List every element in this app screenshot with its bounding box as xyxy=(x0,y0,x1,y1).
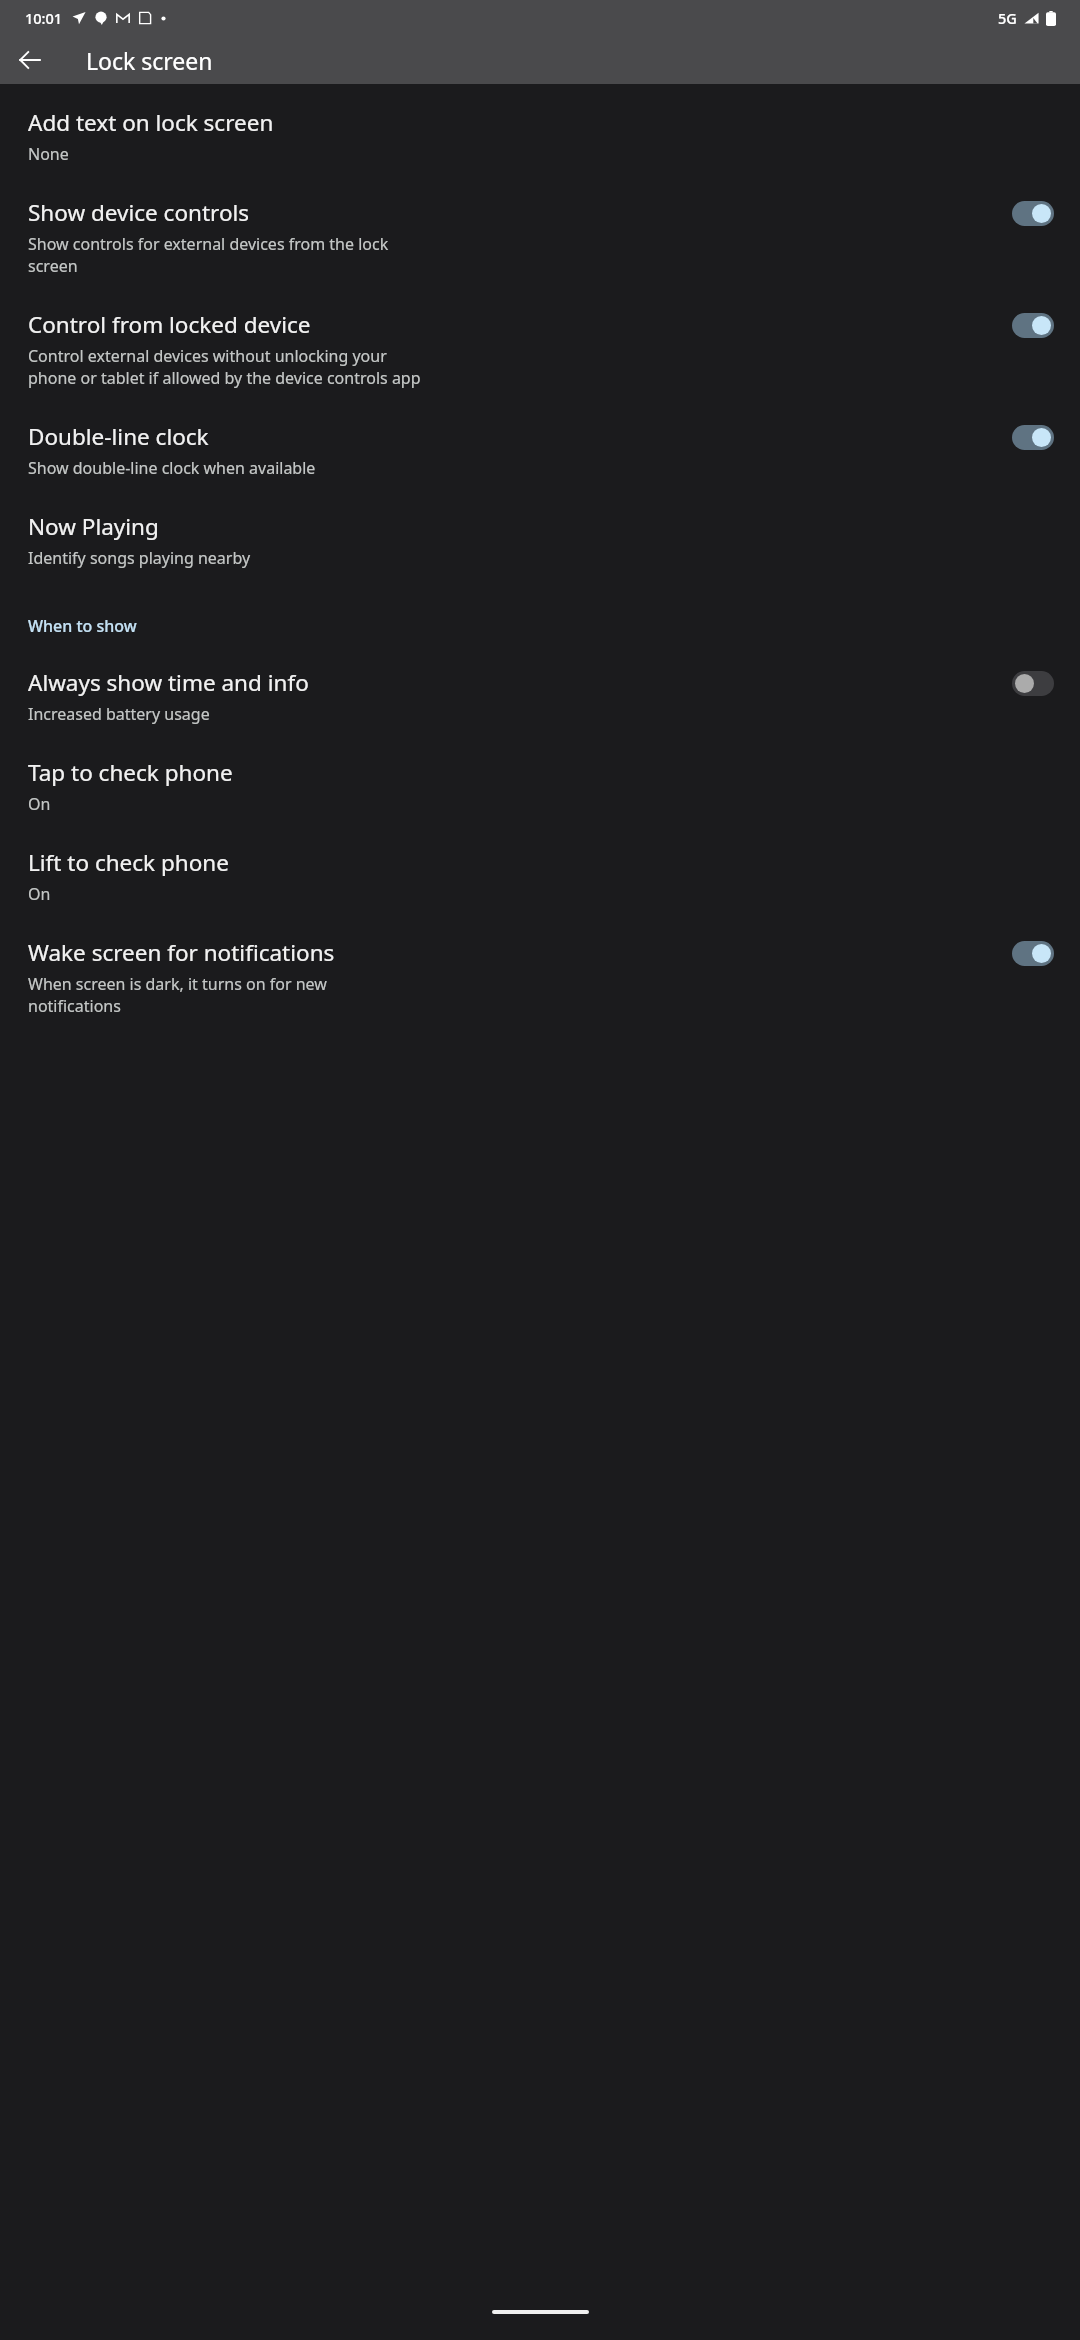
button[interactable]: Control from locked device xyxy=(1012,313,1054,338)
staticText: Increased battery usage xyxy=(28,703,210,725)
staticText: When to show xyxy=(28,615,137,637)
staticText: Add text on lock screen xyxy=(28,107,274,138)
button[interactable]: Show device controls xyxy=(0,181,1080,293)
staticText: When screen is dark, it turns on for new xyxy=(28,973,327,995)
staticText: None xyxy=(28,143,69,165)
button[interactable]: Always show time and info xyxy=(1012,671,1054,696)
staticText: Control from locked device xyxy=(28,309,311,340)
button[interactable]: Back xyxy=(6,36,54,84)
staticText: Lock screen xyxy=(86,45,213,76)
button[interactable]: Control from locked device xyxy=(0,293,1080,405)
button[interactable]: Double-line clock xyxy=(1012,425,1054,450)
staticText: Control external devices without unlocki… xyxy=(28,345,387,367)
staticText: phone or tablet if allowed by the device… xyxy=(28,367,421,389)
staticText: notifications xyxy=(28,995,121,1017)
button[interactable]: Now Playing xyxy=(0,495,1080,585)
staticText: Identify songs playing nearby xyxy=(28,547,251,569)
staticText: Wake screen for notifications xyxy=(28,937,335,968)
staticText: 10:01 xyxy=(25,8,63,28)
staticText: On xyxy=(28,793,51,815)
staticText: Show controls for external devices from … xyxy=(28,233,389,255)
button[interactable]: Double-line clock xyxy=(0,405,1080,495)
staticText: Always show time and info xyxy=(28,667,309,698)
staticText: Lift to check phone xyxy=(28,847,229,878)
button[interactable]: Tap to check phone xyxy=(0,741,1080,831)
staticText: Tap to check phone xyxy=(28,757,233,788)
button[interactable]: Wake screen for notifications xyxy=(0,921,1080,1033)
staticText: Double-line clock xyxy=(28,421,209,452)
staticText: On xyxy=(28,883,51,905)
button[interactable]: Show device controls xyxy=(1012,201,1054,226)
button[interactable]: Wake screen for notifications xyxy=(1012,941,1054,966)
button[interactable]: Lift to check phone xyxy=(0,831,1080,921)
staticText: Now Playing xyxy=(28,511,159,542)
button[interactable]: Always show time and info xyxy=(0,651,1080,741)
staticText: 5G xyxy=(998,8,1017,28)
staticText: Show double-line clock when available xyxy=(28,457,316,479)
staticText: screen xyxy=(28,255,78,277)
button[interactable]: Add text on lock screen xyxy=(0,91,1080,181)
staticText: Show device controls xyxy=(28,197,250,228)
